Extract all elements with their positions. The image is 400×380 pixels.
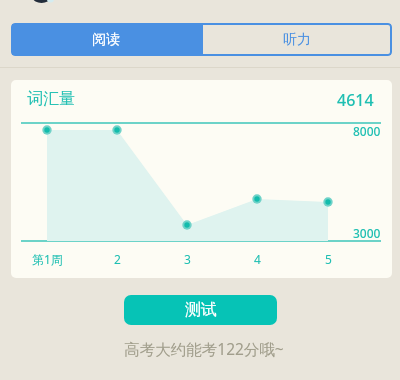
- staticText: 3: [184, 251, 191, 267]
- staticText: 第1周: [32, 251, 63, 267]
- staticText: 听力: [283, 31, 311, 49]
- staticText: 5: [325, 251, 332, 267]
- staticText: 2: [114, 251, 121, 267]
- staticText: 4614: [337, 89, 374, 111]
- staticText: 8000: [353, 123, 381, 139]
- staticText: 高考大约能考122分哦~: [124, 338, 284, 359]
- staticText: 3000: [353, 225, 381, 241]
- staticText: 4: [254, 251, 261, 267]
- staticText: 词汇量: [27, 89, 75, 109]
- button[interactable]: 测试: [124, 295, 277, 325]
- button[interactable]: 阅读: [11, 23, 201, 56]
- button[interactable]: 听力: [201, 23, 392, 56]
- staticText: 测试: [185, 300, 217, 320]
- staticText: 阅读: [92, 31, 120, 49]
